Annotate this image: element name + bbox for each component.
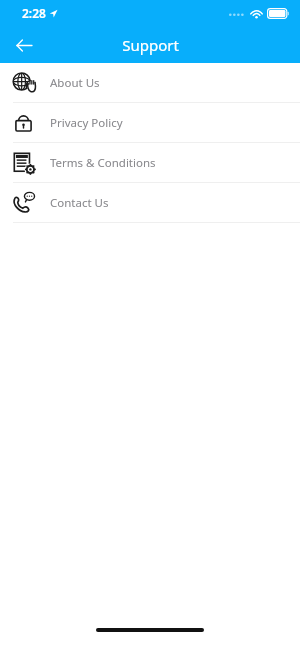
- staticText: Contact Us: [50, 195, 109, 211]
- button[interactable]: About Us: [0, 63, 300, 103]
- staticText: About Us: [50, 75, 100, 91]
- button[interactable]: Back: [8, 29, 40, 61]
- staticText: Privacy Policy: [50, 115, 123, 131]
- staticText: Support: [122, 35, 179, 55]
- button[interactable]: Terms & Conditions: [0, 143, 300, 183]
- staticText: Terms & Conditions: [50, 155, 156, 171]
- button[interactable]: Contact Us: [0, 183, 300, 223]
- staticText: 2:28: [22, 5, 46, 21]
- button[interactable]: Privacy Policy: [0, 103, 300, 143]
